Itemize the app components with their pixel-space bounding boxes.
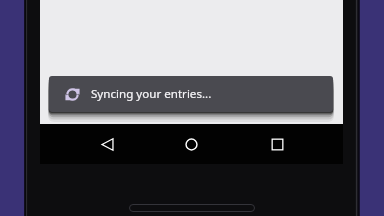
staticText: Syncing your entries... [91, 86, 212, 102]
button[interactable]: Back [101, 138, 114, 151]
button[interactable]: Home [185, 138, 198, 151]
button[interactable]: Syncing your entries... [49, 76, 333, 112]
button[interactable]: Recents [271, 138, 284, 151]
